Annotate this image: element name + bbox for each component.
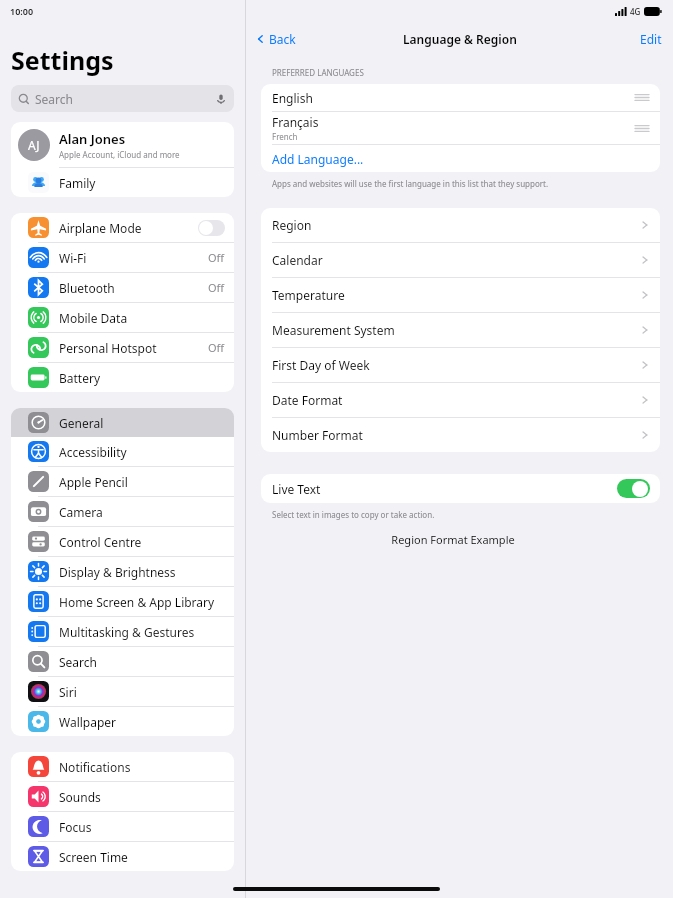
staticText: Français [272,114,319,130]
button[interactable]: Control Centre [11,527,234,557]
button[interactable]: Notifications [11,752,234,782]
button[interactable]: Live Text toggle [617,479,650,498]
staticText: Apple Pencil [59,474,128,490]
staticText: Back [269,31,296,47]
staticText: Live Text [272,481,321,497]
staticText: AJ [28,137,40,153]
staticText: Region Format Example [246,532,660,547]
staticText: Bluetooth [59,280,115,296]
staticText: Temperature [272,287,345,303]
staticText: First Day of Week [272,357,370,373]
staticText: Wallpaper [59,714,117,730]
staticText: Language & Region [403,31,517,47]
staticText: Search [35,91,73,107]
staticText: Notifications [59,759,131,775]
button[interactable]: Sounds [11,782,234,812]
staticText: Accessibility [59,444,127,460]
staticText: Settings [11,43,114,77]
button[interactable]: Camera [11,497,234,527]
button[interactable]: Airplane Mode [11,213,234,243]
staticText: Search [59,654,97,670]
button[interactable]: Wallpaper [11,707,234,736]
staticText: Alan Jones [59,130,126,148]
button[interactable]: Personal Hotspot [11,333,234,363]
button[interactable]: Focus [11,812,234,842]
button[interactable]: General [11,408,234,437]
button[interactable]: Bluetooth [11,273,234,303]
button[interactable]: Back [246,31,304,47]
staticText: Screen Time [59,849,128,865]
button[interactable]: First Day of Week [261,348,660,382]
staticText: Airplane Mode [59,220,142,236]
staticText: Off [208,280,225,295]
staticText: Edit [640,31,662,47]
staticText: Sounds [59,789,101,805]
button[interactable]: Screen Time [11,842,234,871]
button[interactable]: Mobile Data [11,303,234,333]
button[interactable]: Live Text [261,474,660,503]
staticText: French [272,131,298,142]
staticText: Focus [59,819,92,835]
button[interactable]: Date Format [261,383,660,417]
button[interactable]: Region [261,208,660,242]
button[interactable]: Accessibility [11,437,234,467]
staticText: 10:00 [10,5,34,17]
button[interactable]: Battery [11,363,234,392]
staticText: Off [208,250,225,265]
button[interactable]: Edit [629,31,673,47]
staticText: Display & Brightness [59,564,176,580]
button[interactable]: Measurement System [261,313,660,347]
staticText: Region [272,217,312,233]
staticText: PREFERRED LANGUAGES [272,67,364,78]
button[interactable]: Display & Brightness [11,557,234,587]
staticText: Multitasking & Gestures [59,624,195,640]
staticText: Date Format [272,392,343,408]
button[interactable]: Siri [11,677,234,707]
button[interactable]: Number Format [261,418,660,452]
button[interactable]: Home Screen & App Library [11,587,234,617]
button[interactable]: Add Language... [261,145,660,172]
button[interactable]: Search [11,85,234,112]
staticText: Control Centre [59,534,142,550]
button[interactable]: Temperature [261,278,660,312]
staticText: Select text in images to copy or take ac… [272,509,435,520]
button[interactable]: Wi-Fi [11,243,234,273]
button[interactable]: Family [11,168,234,197]
button[interactable]: Apple Pencil [11,467,234,497]
staticText: Home Screen & App Library [59,594,215,610]
staticText: Add Language... [272,151,364,167]
staticText: Off [208,340,225,355]
staticText: Calendar [272,252,323,268]
button[interactable]: Calendar [261,243,660,277]
button[interactable]: Multitasking & Gestures [11,617,234,647]
staticText: English [272,90,313,106]
staticText: General [59,415,104,431]
staticText: Wi-Fi [59,250,87,266]
button[interactable]: Search [11,647,234,677]
staticText: Personal Hotspot [59,340,157,356]
staticText: Camera [59,504,103,520]
staticText: Apple Account, iCloud and more [59,149,180,160]
staticText: 4G [630,6,641,17]
staticText: Measurement System [272,322,395,338]
button[interactable]: Français [261,112,660,144]
staticText: Number Format [272,427,363,443]
staticText: Mobile Data [59,310,128,326]
button[interactable]: English [261,84,660,111]
button[interactable]: AJ [11,122,234,167]
staticText: Apps and websites will use the first lan… [272,178,549,189]
staticText: Siri [59,684,77,700]
staticText: Family [59,175,96,191]
staticText: Battery [59,370,101,386]
button[interactable]: Airplane Mode toggle [198,220,225,236]
